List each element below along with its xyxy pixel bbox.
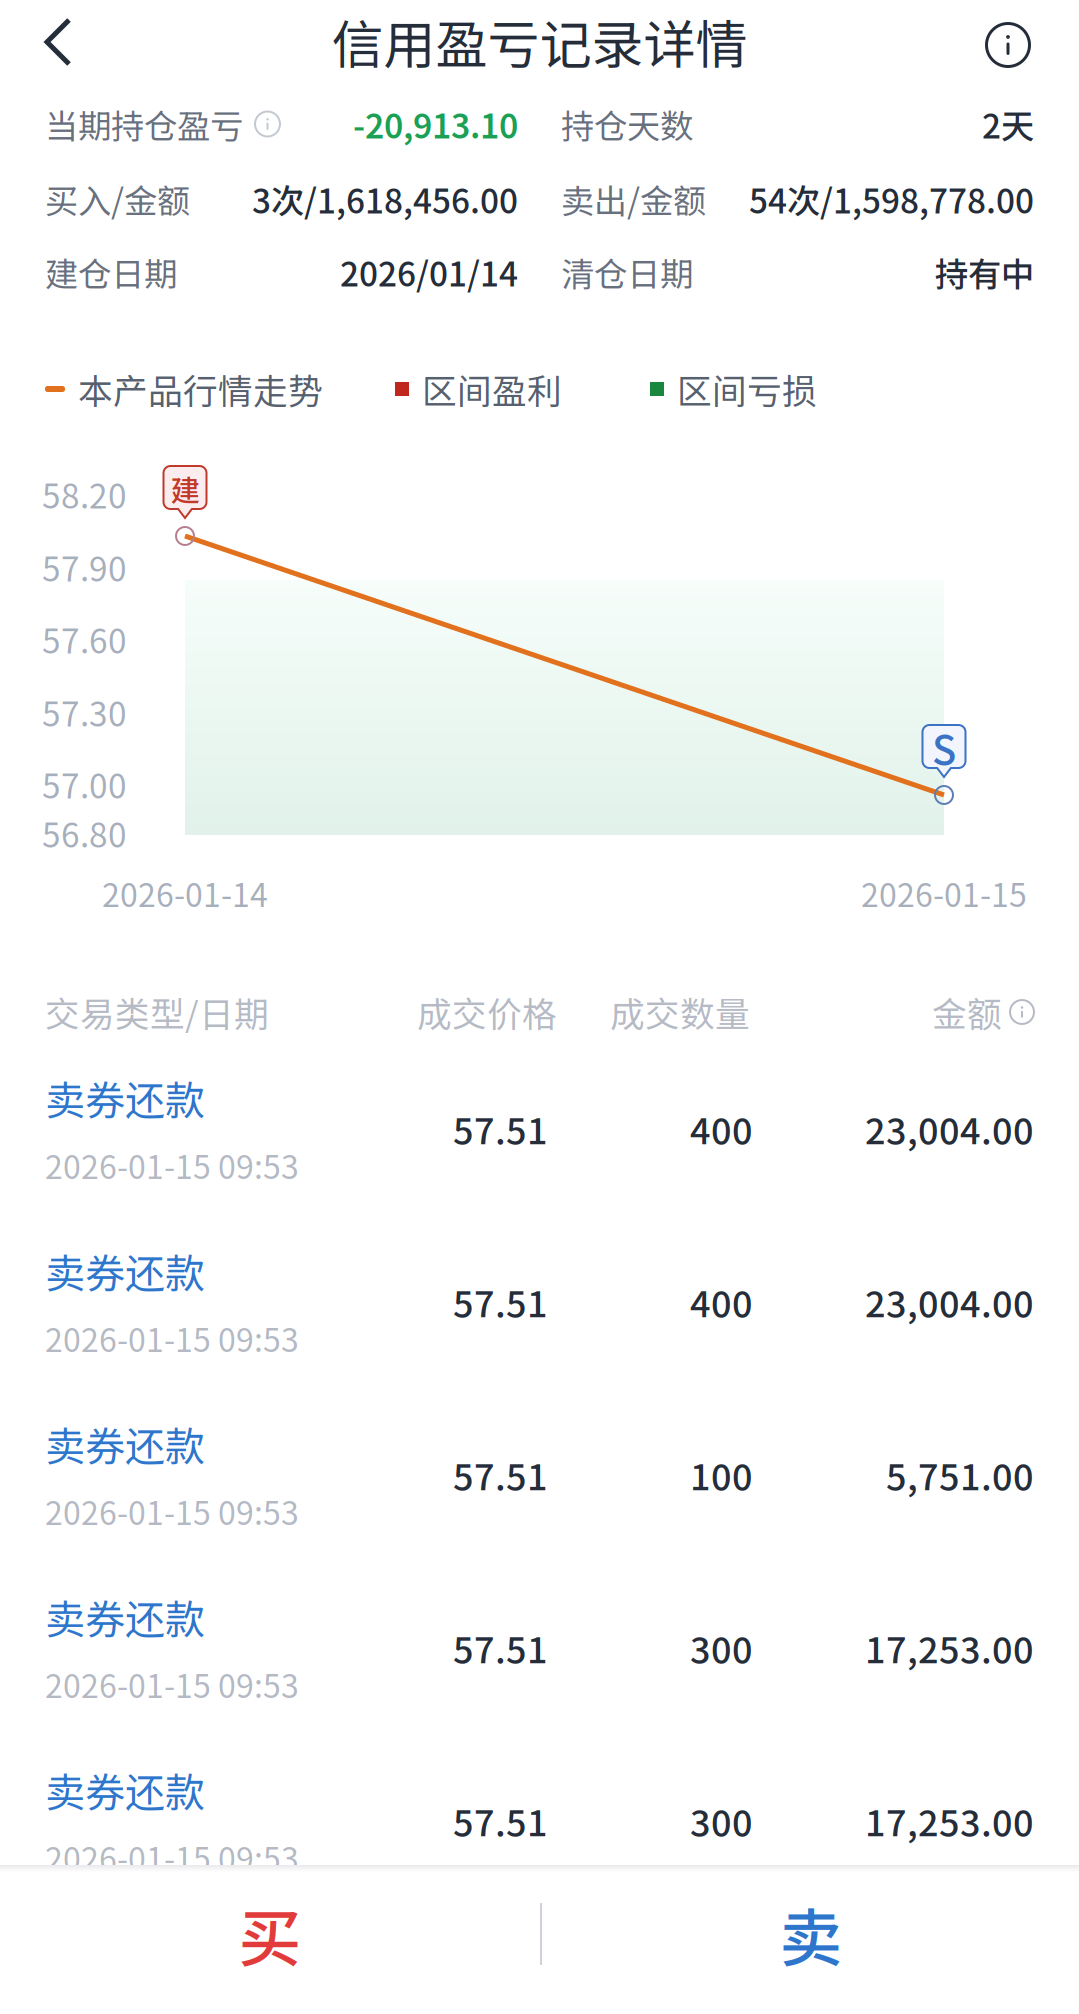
staticText: 卖券还款 (45, 1588, 205, 1646)
staticText: 建仓日期 (45, 248, 177, 296)
staticText: 57.30 (42, 688, 127, 736)
staticText: 300 (690, 1794, 753, 1846)
staticText: 400 (690, 1102, 753, 1154)
staticText: 成交价格 (417, 987, 557, 1037)
button[interactable]: 卖券还款 (0, 1561, 1079, 1734)
staticText: 54次/1,598,778.00 (749, 175, 1034, 223)
staticText: 卖券还款 (45, 1415, 205, 1473)
staticText: 23,004.00 (865, 1275, 1034, 1327)
staticText: 400 (690, 1275, 753, 1327)
staticText: 交易类型/日期 (45, 987, 269, 1037)
staticText: 57.60 (42, 615, 127, 663)
staticText: 金额 (932, 987, 1002, 1037)
staticText: 57.00 (42, 760, 127, 808)
staticText: 成交数量 (610, 987, 750, 1037)
staticText: 2026-01-15 (861, 870, 1027, 916)
staticText: 57.51 (453, 1794, 548, 1846)
staticText: 57.90 (42, 543, 127, 591)
button[interactable]: More information (964, 1, 1052, 89)
staticText: 买入/金额 (45, 175, 190, 223)
staticText: 300 (690, 1621, 753, 1673)
staticText: 买 (238, 1889, 301, 1979)
staticText: 17,253.00 (865, 1621, 1034, 1673)
staticText: 2026-01-15 09:53 (45, 1142, 299, 1188)
staticText: 2026-01-15 09:53 (45, 1834, 299, 1880)
staticText: 57.51 (453, 1621, 548, 1673)
staticText: S (932, 718, 956, 776)
button[interactable]: 卖券还款 (0, 1042, 1079, 1215)
staticText: 信用盈亏记录详情 (331, 3, 747, 79)
staticText: 区间亏损 (677, 364, 817, 414)
button[interactable]: 卖 (541, 1861, 1079, 2007)
staticText: 本产品行情走势 (78, 364, 323, 414)
staticText: 58.20 (42, 470, 127, 518)
button[interactable]: 买 (0, 1861, 540, 2007)
staticText: 持仓天数 (561, 100, 693, 148)
staticText: 卖券还款 (45, 1761, 205, 1819)
staticText: 清仓日期 (561, 248, 693, 296)
staticText: 2026-01-15 09:53 (45, 1488, 299, 1534)
staticText: -20,913.10 (353, 100, 518, 148)
staticText: 57.51 (453, 1102, 548, 1154)
button[interactable]: 卖券还款 (0, 1388, 1079, 1561)
staticText: 卖出/金额 (561, 175, 706, 223)
staticText: 5,751.00 (886, 1448, 1034, 1500)
staticText: 100 (690, 1448, 753, 1500)
staticText: 2天 (982, 100, 1034, 148)
staticText: 卖券还款 (45, 1069, 205, 1127)
staticText: 卖 (779, 1889, 842, 1979)
staticText: 17,253.00 (865, 1794, 1034, 1846)
staticText: 23,004.00 (865, 1102, 1034, 1154)
button[interactable]: Back (14, 0, 102, 86)
staticText: 持有中 (935, 248, 1034, 296)
staticText: 卖券还款 (45, 1242, 205, 1300)
staticText: 56.80 (42, 809, 127, 857)
staticText: 2026-01-15 09:53 (45, 1315, 299, 1361)
button[interactable]: 卖券还款 (0, 1215, 1079, 1388)
staticText: 建 (170, 467, 199, 510)
staticText: 2026-01-15 09:53 (45, 1661, 299, 1707)
button[interactable]: 卖券还款 (0, 1734, 1079, 1907)
staticText: 57.51 (453, 1275, 548, 1327)
staticText: 57.51 (453, 1448, 548, 1500)
staticText: 区间盈利 (422, 364, 562, 414)
staticText: 当期持仓盈亏 (45, 100, 243, 148)
staticText: 3次/1,618,456.00 (252, 175, 518, 223)
staticText: 2026-01-14 (102, 870, 268, 916)
staticText: 2026/01/14 (340, 248, 518, 296)
